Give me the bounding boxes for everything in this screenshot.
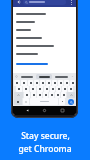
button[interactable]: [68, 86, 73, 92]
button[interactable]: [34, 80, 39, 86]
staticText: get Chrooma: [18, 143, 72, 155]
button[interactable]: Shift: [67, 92, 75, 98]
staticText: Stay secure,: [21, 130, 70, 142]
button[interactable]: Space: [30, 98, 58, 105]
button[interactable]: [40, 80, 45, 86]
button[interactable]: [16, 50, 73, 58]
button[interactable]: [37, 92, 42, 98]
button[interactable]: [36, 74, 52, 79]
button[interactable]: Back: [15, 0, 22, 5]
button[interactable]: [64, 80, 69, 86]
button[interactable]: [55, 76, 68, 78]
button[interactable]: [37, 86, 43, 92]
button[interactable]: Search: [68, 99, 74, 105]
button[interactable]: [23, 0, 66, 5]
button[interactable]: [16, 10, 73, 18]
button[interactable]: [21, 76, 33, 78]
button[interactable]: [16, 26, 73, 34]
button[interactable]: Home: [41, 107, 48, 114]
button[interactable]: [31, 92, 36, 98]
button[interactable]: [14, 98, 22, 105]
button[interactable]: [28, 80, 33, 86]
button[interactable]: [52, 80, 57, 86]
button[interactable]: [16, 18, 73, 26]
button[interactable]: [59, 98, 65, 105]
button[interactable]: [62, 86, 67, 92]
button[interactable]: [14, 80, 20, 86]
button[interactable]: [16, 86, 22, 92]
button[interactable]: [16, 61, 73, 67]
button[interactable]: [21, 80, 27, 86]
button[interactable]: More options: [68, 0, 74, 5]
button[interactable]: [49, 92, 54, 98]
button[interactable]: [46, 80, 51, 86]
button[interactable]: Keyboard settings: [15, 75, 18, 78]
button[interactable]: [61, 92, 66, 98]
button[interactable]: Shift: [14, 92, 23, 98]
button[interactable]: [58, 80, 63, 86]
button[interactable]: [16, 34, 73, 42]
button[interactable]: [30, 86, 36, 92]
button[interactable]: Expand suggestions: [71, 75, 74, 78]
button[interactable]: Emoji: [23, 98, 29, 105]
button[interactable]: [16, 42, 73, 50]
button[interactable]: Recents: [59, 107, 66, 114]
button[interactable]: [50, 86, 55, 92]
button[interactable]: [56, 86, 61, 92]
button[interactable]: [44, 86, 49, 92]
button[interactable]: [23, 86, 29, 92]
button[interactable]: [55, 92, 60, 98]
button[interactable]: Back: [24, 107, 31, 114]
button[interactable]: [43, 92, 48, 98]
button[interactable]: [70, 80, 75, 86]
button[interactable]: [24, 92, 30, 98]
